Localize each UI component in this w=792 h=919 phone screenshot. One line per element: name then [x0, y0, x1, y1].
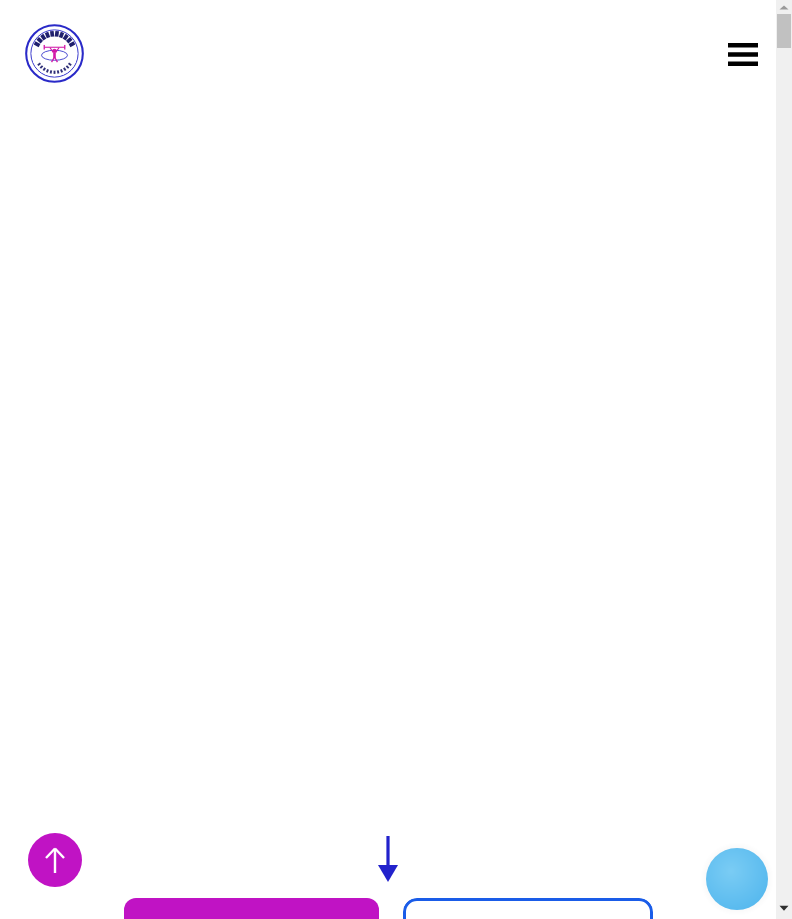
button[interactable]: Open menu: [722, 34, 764, 74]
button[interactable]: Scroll down: [776, 901, 792, 915]
button[interactable]: Scroll up: [776, 2, 792, 14]
button[interactable]: Scroll to top: [28, 833, 82, 887]
button[interactable]: Sky Fitness home: [25, 24, 84, 83]
button[interactable]: [403, 898, 653, 919]
button[interactable]: Scroll to content: [372, 836, 404, 882]
button[interactable]: [124, 898, 379, 919]
button[interactable]: Open chat: [700, 842, 774, 916]
